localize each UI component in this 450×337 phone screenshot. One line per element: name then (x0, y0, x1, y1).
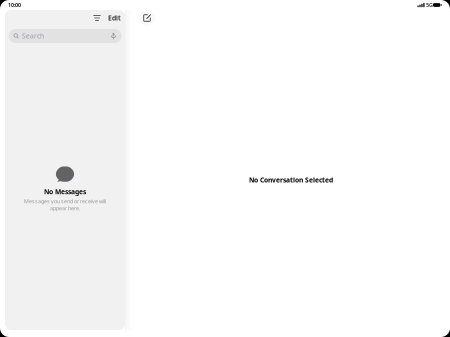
staticText: No Messages (44, 187, 86, 196)
staticText: appear here. (50, 205, 80, 212)
staticText: Edit (108, 14, 121, 22)
button[interactable]: Edit (104, 11, 125, 24)
button[interactable]: Filter conversations (90, 11, 104, 24)
button[interactable]: Compose new message (139, 10, 155, 26)
staticText: No Conversation Selected (249, 176, 333, 184)
staticText: Messages you send or receive will (24, 198, 106, 205)
staticText: 10:00 (8, 1, 21, 9)
staticText: Search (22, 32, 44, 40)
staticText: 5G (426, 1, 433, 9)
